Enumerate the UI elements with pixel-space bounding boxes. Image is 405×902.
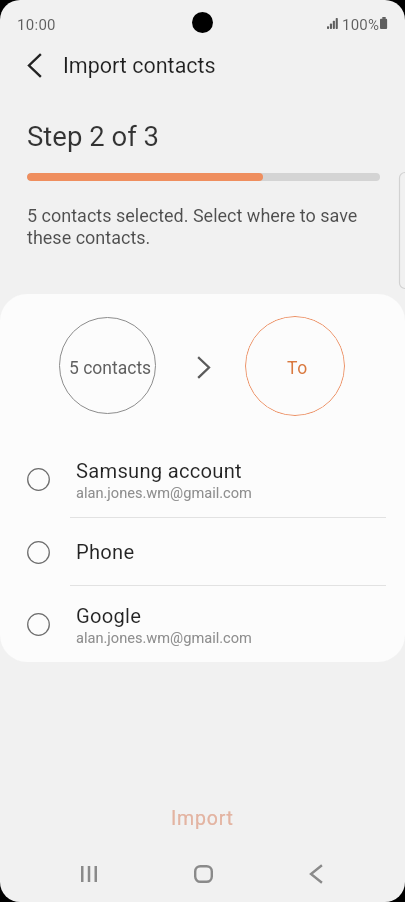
staticText: To [287,358,308,379]
button[interactable]: Home [169,854,237,894]
staticText: 100% [342,16,380,34]
staticText: 10:00 [17,16,56,34]
staticText: alan.jones.wm@gmail.com [76,629,252,646]
staticText: Step 2 of 3 [27,120,159,152]
button[interactable]: Navigate up [8,39,61,92]
staticText: 5 contacts [69,358,152,379]
button[interactable]: Back [282,854,350,894]
button[interactable]: Phone [0,518,405,586]
button[interactable]: To [245,316,345,416]
button[interactable]: Recent apps [55,854,123,894]
staticText: Import contacts [63,53,216,78]
staticText: Google [76,604,142,628]
button[interactable]: Import [0,789,405,847]
staticText: Phone [76,540,135,564]
button[interactable]: Samsung account [0,441,405,518]
staticText: Import [171,807,234,830]
staticText: Samsung account [76,459,242,483]
button[interactable]: Google [0,586,405,662]
staticText: alan.jones.wm@gmail.com [76,484,252,501]
staticText: 5 contacts selected. Select where to sav… [27,205,372,249]
